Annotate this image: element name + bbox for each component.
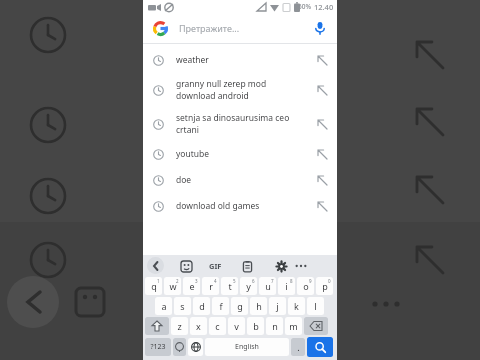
staticText: u [265,280,271,292]
staticText: i [285,280,288,292]
button[interactable]: granny null zerep mod [143,73,337,107]
button[interactable]: Insert suggestion [311,49,333,71]
staticText: v [234,320,239,332]
button[interactable]: m [285,317,302,335]
staticText: 60% [298,2,311,11]
staticText: 8 [290,278,293,284]
staticText: o [303,280,309,292]
button[interactable]: g [231,297,248,315]
staticText: doe [176,174,192,186]
button[interactable]: r [202,277,219,295]
button[interactable]: l [307,297,324,315]
button[interactable]: u [259,277,276,295]
staticText: d [199,300,205,312]
button[interactable]: Insert suggestion [311,79,333,101]
button[interactable]: Претражите... [143,13,337,43]
button[interactable]: Insert suggestion [311,195,333,217]
button[interactable]: youtube [143,141,337,167]
staticText: z [177,320,182,332]
staticText: m [289,320,298,332]
staticText: n [272,320,278,332]
staticText: download android [176,90,249,102]
button[interactable]: Insert suggestion [311,169,333,191]
staticText: r [209,280,213,292]
staticText: download old games [176,200,260,212]
staticText: l [314,300,317,312]
staticText: j [276,300,279,312]
staticText: h [256,300,262,312]
staticText: setnja sa dinosaurusima ceo [176,112,290,124]
button[interactable]: z [171,317,188,335]
button[interactable]: Back [147,257,164,274]
button[interactable]: . [291,338,305,356]
staticText: x [196,320,201,332]
button[interactable]: Stickers [177,257,195,275]
staticText: e [189,280,195,292]
staticText: Претражите... [179,22,309,34]
button[interactable] [304,317,328,335]
button[interactable]: e [183,277,200,295]
staticText: 3 [195,278,198,284]
button[interactable]: download old games [143,193,337,219]
staticText: GIF [209,261,222,271]
staticText: y [246,280,251,292]
staticText: youtube [176,148,210,160]
button[interactable]: f [212,297,229,315]
button[interactable]: s [174,297,191,315]
staticText: 9 [309,278,312,284]
staticText: 7 [271,278,274,284]
staticText: weather [176,54,209,66]
button[interactable]: More options [290,255,312,276]
button[interactable]: v [228,317,245,335]
button[interactable]: doe [143,167,337,193]
button[interactable]: Voice search [309,17,331,39]
staticText: 0 [328,278,331,284]
staticText: . [297,341,300,353]
button[interactable]: k [288,297,305,315]
staticText: b [253,320,259,332]
staticText: w [169,280,177,292]
staticText: q [151,280,157,292]
staticText: 6 [252,278,255,284]
button[interactable]: d [193,297,210,315]
button[interactable]: setnja sa dinosaurusima ceo [143,107,337,141]
button[interactable] [307,337,333,357]
button[interactable] [173,338,186,356]
staticText: t [228,280,232,292]
button[interactable]: o [297,277,314,295]
button[interactable] [188,338,203,356]
button[interactable]: c [209,317,226,335]
button[interactable]: t [221,277,238,295]
button[interactable]: q [145,277,162,295]
button[interactable]: n [266,317,283,335]
button[interactable]: x [190,317,207,335]
button[interactable]: weather [143,47,337,73]
button[interactable]: w [164,277,181,295]
button[interactable]: Insert suggestion [311,143,333,165]
staticText: 4 [214,278,217,284]
staticText: g [237,300,243,312]
button[interactable] [145,317,169,335]
staticText: ?123 [150,342,166,352]
button[interactable]: y [240,277,257,295]
button[interactable]: i [278,277,295,295]
staticText: p [322,280,328,292]
button[interactable]: Settings [272,257,290,275]
staticText: c [215,320,220,332]
button[interactable]: English [205,338,289,356]
button[interactable]: a [155,297,172,315]
staticText: k [294,300,299,312]
button[interactable]: Clipboard [238,257,256,275]
staticText: granny null zerep mod [176,78,267,90]
staticText: 5 [233,278,236,284]
staticText: 12.40 [314,2,334,12]
button[interactable]: ?123 [145,338,171,356]
button[interactable]: p [316,277,333,295]
button[interactable]: j [269,297,286,315]
staticText: s [180,300,185,312]
button[interactable]: Insert suggestion [311,113,333,135]
button[interactable]: b [247,317,264,335]
staticText: 1 [157,278,160,284]
button[interactable]: h [250,297,267,315]
button[interactable]: GIF [209,261,222,271]
